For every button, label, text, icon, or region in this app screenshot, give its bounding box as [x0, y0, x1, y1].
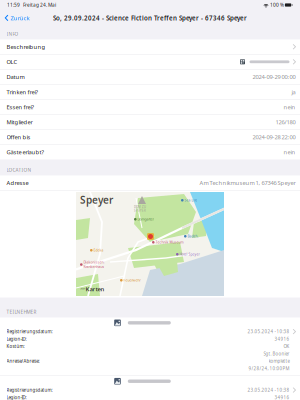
staticText:  — [80, 286, 85, 291]
staticText: Legion-ID: — [6, 394, 26, 400]
staticText: Registrierungsdatum: — [6, 387, 52, 393]
staticText: 34916 — [274, 336, 289, 342]
staticText: 23.05.2024 - 10:38 — [247, 329, 289, 335]
staticText: Hotel Speyer — [179, 252, 199, 256]
staticText: Trinken frei? — [6, 88, 37, 96]
staticText: Sea Life — [184, 198, 197, 202]
staticText: So, 29.09.2024 - Science Fiction Treffen… — [53, 14, 247, 22]
staticText: Registrierungsdatum: — [6, 329, 52, 335]
staticText: nein — [283, 148, 295, 156]
staticText: Badeh. — [187, 234, 198, 238]
staticText: LOCATION — [6, 167, 31, 173]
staticText: 11:59 — [7, 2, 20, 8]
staticText: Zurück — [10, 14, 29, 22]
staticText: DOM ZU SPEYER — [134, 205, 146, 213]
staticText: Kostüm: — [6, 343, 24, 349]
staticText: Feuerwehr — [123, 278, 140, 282]
staticText: Karten — [86, 285, 105, 293]
staticText: Am Technikmuseum 1, 67346 Speyer — [199, 179, 295, 187]
staticText: Diakonissen- Krankenhaus — [83, 260, 104, 269]
staticText: 2024-09-28 22:00 — [252, 133, 295, 141]
staticText: OLC — [6, 58, 17, 66]
staticText: 23.05.2024 - 10:38 — [247, 387, 289, 393]
staticText: 34916 — [274, 394, 289, 400]
button[interactable]: Zurück — [0, 11, 33, 25]
staticText: Gäste erlaubt? — [6, 148, 43, 156]
staticText: Legion-ID: — [6, 336, 26, 342]
staticText: 126/180 — [275, 118, 295, 126]
staticText: Datum — [6, 73, 24, 81]
staticText: Beschreibung — [6, 43, 45, 51]
staticText: ja — [291, 88, 295, 96]
staticText: Technik Museum — [155, 240, 183, 244]
staticText: Offen bis — [6, 133, 30, 141]
staticText: Edeka — [93, 248, 103, 252]
staticText: Adresse — [6, 179, 28, 187]
staticText: Freitag 24. Mai — [20, 2, 56, 8]
staticText: nein — [283, 103, 295, 111]
staticText: TEILNEHMER — [6, 309, 36, 315]
staticText: Essen frei? — [6, 103, 33, 111]
staticText: OK — [283, 343, 289, 349]
staticText: Domgarten — [137, 217, 154, 221]
staticText: Anreise/Abreise: — [6, 358, 39, 364]
staticText: Sgt. Boonier — [263, 351, 289, 357]
staticText: INFO — [6, 31, 18, 37]
staticText: 100 % — [269, 2, 285, 8]
staticText: komplette — [268, 358, 289, 364]
staticText: 9/28/24, 10:00PM — [248, 366, 289, 372]
staticText: Mitglieder — [6, 118, 32, 126]
staticText: 2024-09-29 00:00 — [252, 73, 295, 81]
staticText: Speyer — [80, 193, 113, 207]
